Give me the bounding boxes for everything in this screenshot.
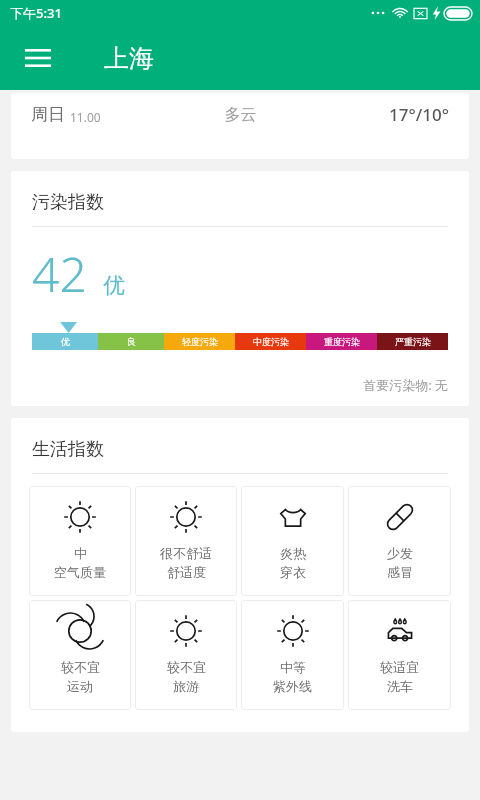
button[interactable]: 中: [29, 486, 131, 596]
staticText: 多云: [171, 105, 310, 125]
staticText: 舒适度: [167, 564, 206, 580]
staticText: 良: [127, 336, 136, 347]
staticText: 中等: [280, 659, 306, 675]
staticText: 中度污染: [253, 336, 289, 347]
staticText: 下午5:31: [10, 4, 62, 22]
staticText: 空气质量: [54, 564, 106, 580]
button[interactable]: 较不宜: [29, 600, 131, 710]
staticText: 周日: [31, 104, 65, 125]
button[interactable]: 很不舒适: [135, 486, 237, 596]
staticText: 穿衣: [280, 564, 306, 580]
button[interactable]: 较不宜: [135, 600, 237, 710]
staticText: 严重污染: [395, 336, 431, 347]
staticText: 旅游: [173, 678, 199, 694]
staticText: 炎热: [280, 545, 306, 561]
staticText: 轻度污染: [182, 336, 218, 347]
staticText: 污染指数: [32, 191, 104, 214]
staticText: 较适宜: [380, 659, 419, 675]
staticText: 42: [32, 241, 87, 306]
staticText: 首要污染物: 无: [11, 376, 448, 394]
staticText: 优: [103, 272, 125, 300]
staticText: 11.00: [70, 109, 101, 125]
staticText: 生活指数: [32, 438, 104, 461]
staticText: 优: [61, 336, 70, 347]
staticText: 洗车: [387, 678, 413, 694]
staticText: 17°/10°: [310, 103, 449, 126]
staticText: 少发: [387, 545, 413, 561]
staticText: 中: [74, 545, 87, 561]
staticText: 较不宜: [61, 659, 100, 675]
staticText: 重度污染: [324, 336, 360, 347]
staticText: 感冒: [387, 564, 413, 580]
button[interactable]: 较适宜: [348, 600, 451, 710]
button[interactable]: 中等: [241, 600, 344, 710]
staticText: 运动: [67, 678, 93, 694]
button[interactable]: 炎热: [241, 486, 344, 596]
staticText: 紫外线: [273, 678, 312, 694]
staticText: 上海: [104, 43, 154, 74]
staticText: 很不舒适: [160, 545, 212, 561]
button[interactable]: 少发: [348, 486, 451, 596]
button[interactable]: Menu: [10, 30, 66, 86]
staticText: 较不宜: [167, 659, 206, 675]
